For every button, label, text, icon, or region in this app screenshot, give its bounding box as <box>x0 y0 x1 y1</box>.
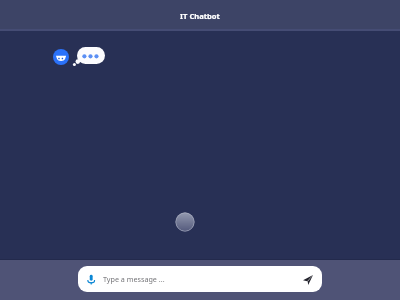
staticText: IT Chatbot <box>180 11 220 21</box>
staticText: Type a message ... <box>103 274 165 284</box>
button[interactable]: Type a message ... <box>103 266 297 292</box>
button[interactable]: Voice input <box>78 266 103 292</box>
button[interactable]: Send <box>298 270 317 289</box>
